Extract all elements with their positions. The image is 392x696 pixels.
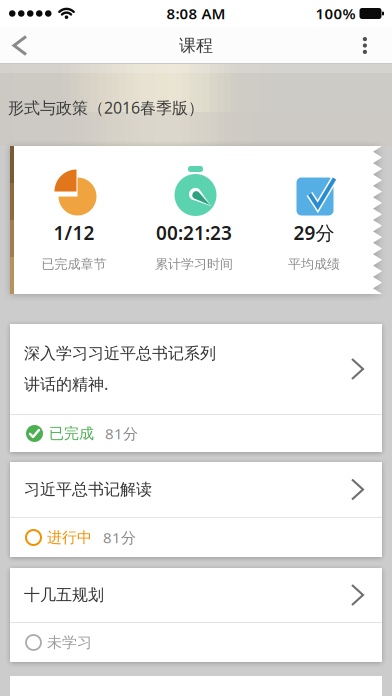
staticText: 已完成章节 <box>41 256 106 272</box>
staticText: 8:08 AM <box>166 3 225 23</box>
staticText: 讲话的精神. <box>24 373 108 394</box>
button[interactable]: 深入学习习近平总书记系列 <box>10 324 382 452</box>
staticText: 累计学习时间 <box>155 256 233 272</box>
staticText: 平均成绩 <box>288 256 340 272</box>
staticText: 已完成 <box>49 424 94 443</box>
staticText: 未学习 <box>47 633 92 652</box>
button[interactable]: 十几五规划 <box>10 568 382 662</box>
staticText: 100% <box>315 3 355 23</box>
staticText: 81分 <box>103 527 136 547</box>
button[interactable]: More <box>351 29 392 62</box>
staticText: 进行中 <box>47 528 92 547</box>
staticText: 十几五规划 <box>24 585 104 605</box>
staticText: 81分 <box>105 423 138 443</box>
staticText: 29分 <box>293 220 334 245</box>
staticText: 00:21:23 <box>156 220 232 245</box>
button[interactable]: Back <box>0 28 46 62</box>
button[interactable]: 习近平总书记解读 <box>10 462 382 557</box>
staticText: 课程 <box>179 35 213 56</box>
staticText: 深入学习习近平总书记系列 <box>24 343 216 363</box>
staticText: 习近平总书记解读 <box>24 480 152 499</box>
staticText: 1/12 <box>53 220 94 245</box>
staticText: 形式与政策（2016春季版） <box>8 97 204 118</box>
